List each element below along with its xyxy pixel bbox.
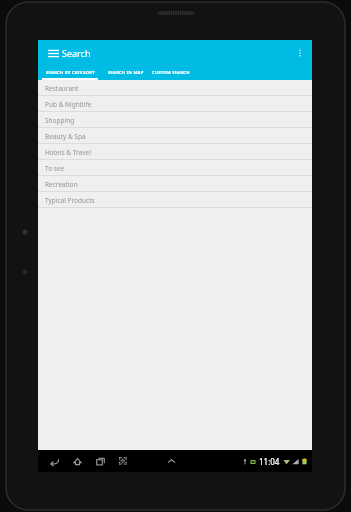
button[interactable]: Restaurant: [38, 80, 312, 96]
staticText: Typical Products: [45, 196, 95, 205]
staticText: To see: [45, 164, 65, 173]
button[interactable]: Expand: [163, 453, 179, 469]
button[interactable]: Recreation: [38, 176, 312, 192]
button[interactable]: Typical Products: [38, 192, 312, 208]
button[interactable]: SEARCH IN MAP: [104, 65, 148, 80]
staticText: Pub & Nightlife: [45, 100, 92, 109]
staticText: 11:04: [259, 456, 280, 467]
staticText: Beauty & Spa: [45, 132, 86, 141]
button[interactable]: CUSTOM SEARCH: [148, 65, 194, 80]
staticText: CUSTOM SEARCH: [152, 70, 190, 76]
button[interactable]: Hotels & Travel: [38, 144, 312, 160]
button[interactable]: Beauty & Spa: [38, 128, 312, 144]
button[interactable]: Open navigation drawer: [44, 44, 62, 62]
button[interactable]: Home: [69, 453, 85, 469]
staticText: Recreation: [45, 180, 78, 189]
staticText: Hotels & Travel: [45, 148, 91, 157]
button[interactable]: Shopping: [38, 112, 312, 128]
button[interactable]: Pub & Nightlife: [38, 96, 312, 112]
staticText: Restaurant: [45, 84, 79, 93]
staticText: Search: [62, 47, 91, 59]
button[interactable]: Recent apps: [92, 453, 108, 469]
button[interactable]: More options: [292, 45, 308, 61]
button[interactable]: To see: [38, 160, 312, 176]
button[interactable]: SEARCH BY CATEGORY: [42, 65, 100, 80]
staticText: SEARCH IN MAP: [108, 70, 144, 76]
staticText: Shopping: [45, 116, 75, 125]
button[interactable]: Screenshot: [115, 453, 131, 469]
staticText: SEARCH BY CATEGORY: [46, 70, 96, 76]
button[interactable]: Back: [46, 453, 62, 469]
